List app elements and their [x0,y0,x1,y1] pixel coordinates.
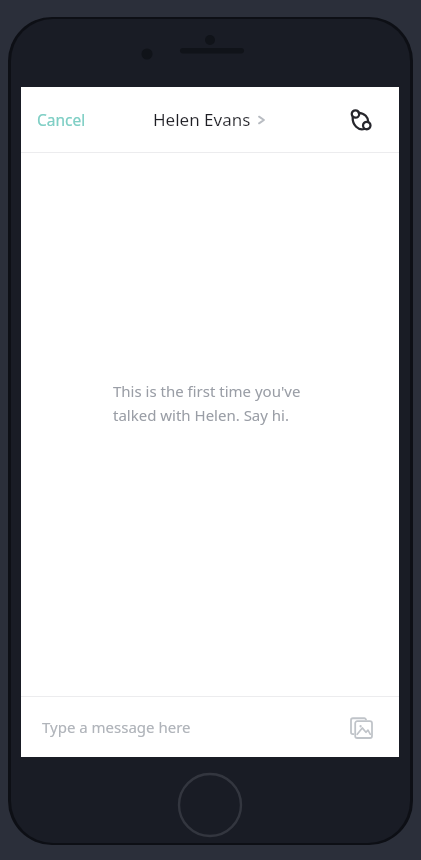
button[interactable]: Type a message here [34,707,199,747]
button[interactable]: Attach photo [347,713,376,742]
button[interactable]: Cancel [29,101,94,138]
button[interactable]: Helen Evans [147,102,271,137]
staticText: This is the first time you've talked wit… [113,381,301,425]
staticText: Cancel [37,109,86,130]
button[interactable]: Call [345,104,377,136]
staticText: Type a message here [42,717,191,737]
staticText: Helen Evans [153,108,251,131]
